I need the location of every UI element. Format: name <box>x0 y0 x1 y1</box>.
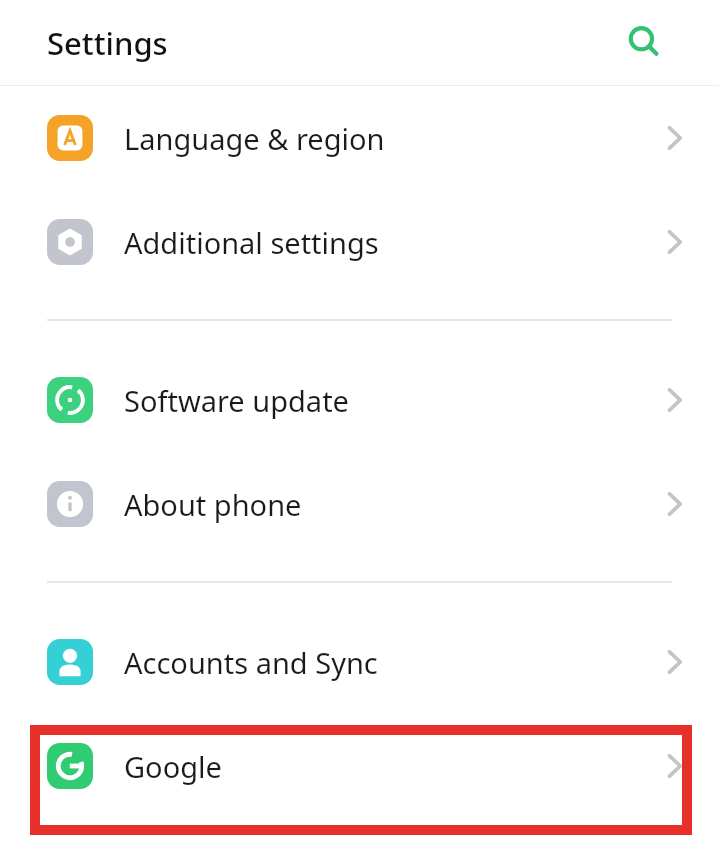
staticText: About phone <box>124 485 664 524</box>
staticText: Google <box>124 747 664 786</box>
button[interactable]: Accounts and Sync <box>0 610 719 714</box>
button[interactable]: Search <box>623 21 667 65</box>
staticText: Language & region <box>124 119 664 158</box>
button[interactable]: Software update <box>0 348 719 452</box>
button[interactable]: About phone <box>0 452 719 556</box>
staticText: Software update <box>124 381 664 420</box>
staticText: Accounts and Sync <box>124 643 664 682</box>
button[interactable]: Language & region <box>0 86 719 190</box>
staticText: Settings <box>47 22 168 64</box>
button[interactable]: Google <box>0 714 719 818</box>
button[interactable]: Additional settings <box>0 190 719 294</box>
staticText: Additional settings <box>124 223 664 262</box>
